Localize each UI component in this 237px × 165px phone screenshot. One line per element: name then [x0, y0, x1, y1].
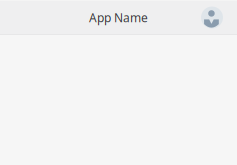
button[interactable]: Profile [201, 6, 223, 28]
staticText: App Name [89, 9, 148, 25]
